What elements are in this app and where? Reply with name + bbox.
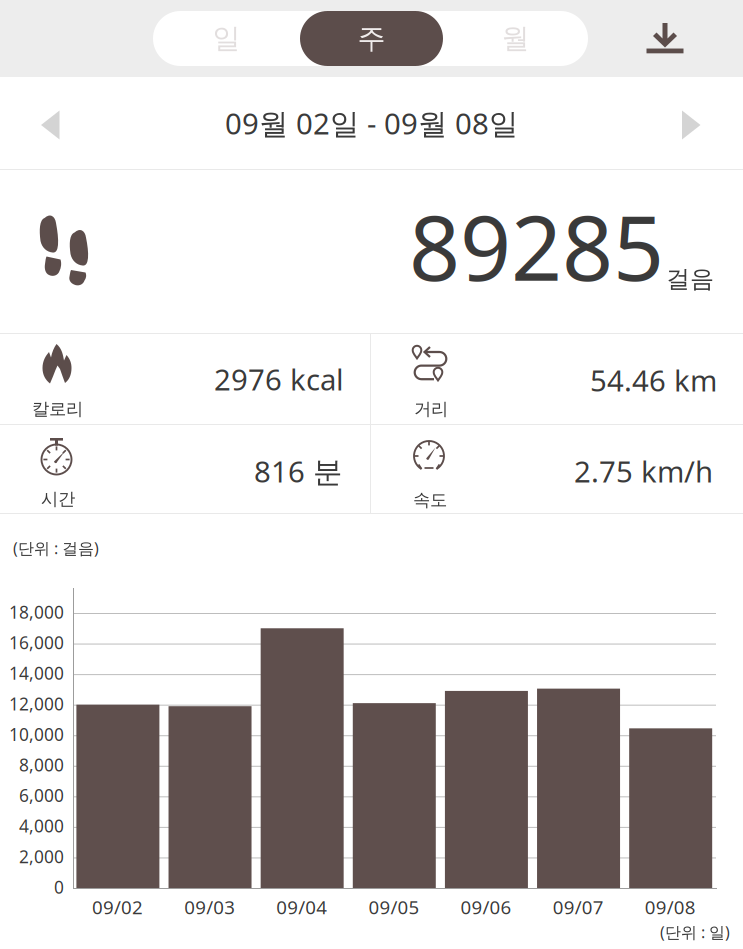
staticText: 걸음 bbox=[666, 264, 714, 294]
button[interactable]: Export bbox=[635, 11, 695, 66]
staticText: 89285 bbox=[409, 187, 664, 305]
staticText: 16,000 bbox=[9, 631, 64, 654]
staticText: 6,000 bbox=[19, 784, 64, 807]
staticText: 거리 bbox=[414, 398, 448, 420]
staticText: 09/02 bbox=[92, 895, 143, 919]
staticText: 09/08 bbox=[645, 895, 696, 919]
staticText: 14,000 bbox=[9, 662, 64, 685]
staticText: 월 bbox=[501, 21, 529, 56]
staticText: 12,000 bbox=[9, 692, 64, 715]
staticText: 2,000 bbox=[19, 845, 64, 868]
staticText: 54.46 km bbox=[590, 360, 717, 399]
button[interactable]: Previous week bbox=[0, 77, 120, 169]
button[interactable]: 월 bbox=[443, 11, 588, 66]
staticText: 4,000 bbox=[19, 814, 64, 837]
button[interactable]: 주 bbox=[300, 11, 443, 66]
button[interactable]: 일 bbox=[153, 11, 300, 66]
staticText: 18,000 bbox=[9, 600, 64, 623]
staticText: 8,000 bbox=[19, 753, 64, 776]
staticText: 10,000 bbox=[9, 723, 64, 746]
button[interactable]: Next week bbox=[623, 77, 743, 169]
staticText: 주 bbox=[357, 21, 385, 56]
staticText: 칼로리 bbox=[32, 398, 83, 420]
staticText: 09/03 bbox=[184, 895, 235, 919]
staticText: 816 분 bbox=[254, 451, 342, 490]
staticText: 2976 kcal bbox=[214, 359, 344, 398]
staticText: (단위 : 일) bbox=[660, 921, 730, 943]
staticText: (단위 : 걸음) bbox=[13, 537, 99, 559]
staticText: 2.75 km/h bbox=[574, 451, 713, 490]
staticText: 09/05 bbox=[368, 895, 419, 919]
staticText: 09/07 bbox=[553, 895, 604, 919]
staticText: 일 bbox=[212, 21, 240, 56]
staticText: 09월 02일 - 09월 08일 bbox=[225, 103, 518, 142]
staticText: 09/06 bbox=[460, 895, 511, 919]
staticText: 시간 bbox=[41, 488, 75, 510]
staticText: 속도 bbox=[413, 489, 447, 511]
staticText: 0 bbox=[54, 875, 64, 898]
staticText: 09/04 bbox=[276, 895, 327, 919]
